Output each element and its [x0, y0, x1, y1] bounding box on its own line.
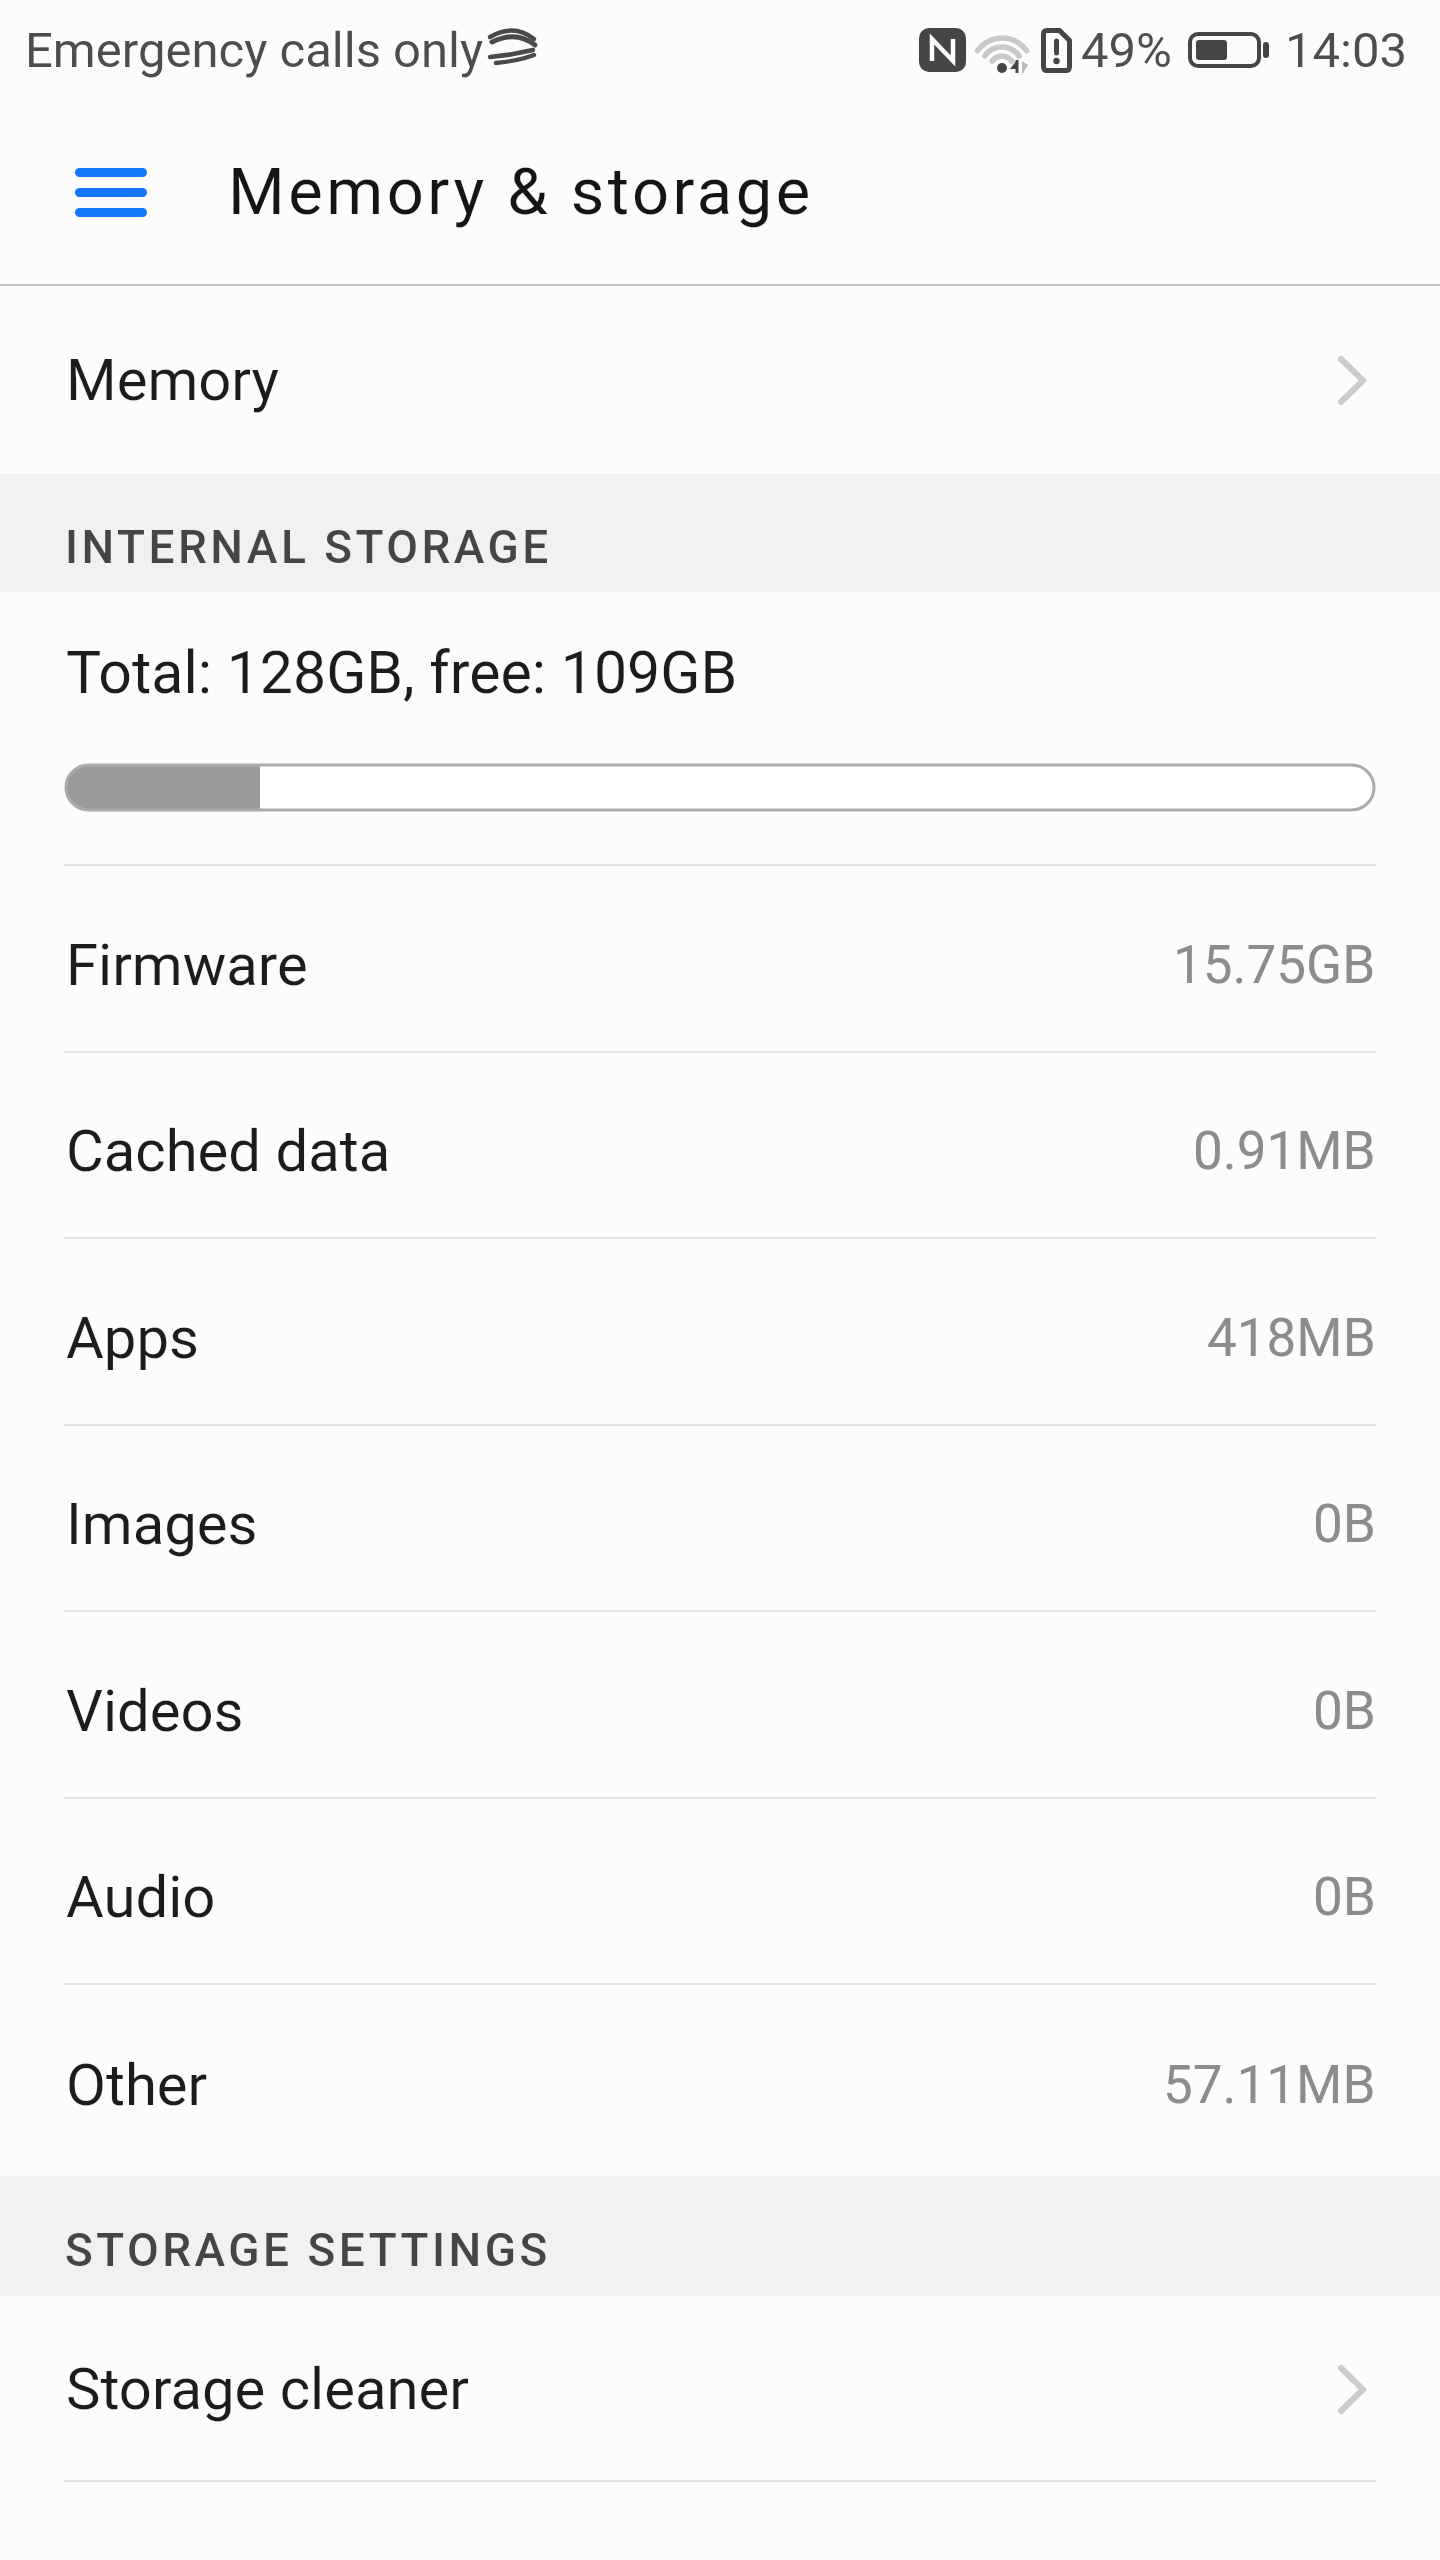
staticText: 15.75GB [1173, 934, 1376, 996]
staticText: Total: 128GB, free: 109GB [66, 638, 738, 707]
button[interactable]: Apps [0, 1239, 1440, 1426]
staticText: Audio [66, 1863, 216, 1931]
staticText: 0B [1313, 1493, 1376, 1555]
staticText: INTERNAL STORAGE [65, 520, 552, 574]
staticText: 57.11MB [1163, 2054, 1376, 2116]
staticText: 49% [1081, 22, 1172, 79]
staticText: Images [66, 1490, 258, 1558]
staticText: Memory & storage [228, 154, 814, 230]
staticText: STORAGE SETTINGS [65, 2223, 551, 2277]
button[interactable]: Firmware [0, 866, 1440, 1053]
button[interactable]: Storage cleaner [0, 2296, 1440, 2482]
staticText: Apps [66, 1304, 199, 1372]
staticText: Cached data [66, 1117, 391, 1185]
staticText: Memory [66, 346, 279, 414]
staticText: Firmware [66, 931, 308, 999]
button[interactable]: Images [0, 1426, 1440, 1612]
staticText: 0B [1313, 1866, 1376, 1928]
staticText: 418MB [1207, 1307, 1376, 1369]
staticText: Other [66, 2051, 208, 2119]
button[interactable]: Cached data [0, 1053, 1440, 1239]
button[interactable]: Audio [0, 1799, 1440, 1985]
button[interactable]: Memory [0, 286, 1440, 474]
staticText: 0.91MB [1193, 1120, 1376, 1182]
staticText: Videos [66, 1677, 244, 1745]
staticText: Emergency calls only [25, 22, 484, 79]
button[interactable] [75, 156, 147, 228]
button[interactable]: Videos [0, 1612, 1440, 1799]
button[interactable]: Other [0, 1985, 1440, 2176]
staticText: 14:03 [1285, 22, 1408, 79]
staticText: Storage cleaner [66, 2355, 469, 2423]
staticText: 0B [1313, 1680, 1376, 1742]
